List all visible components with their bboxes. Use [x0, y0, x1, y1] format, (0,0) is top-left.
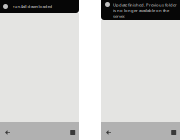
button[interactable]: run4all downloaded [0, 0, 79, 13]
button[interactable]: Recents [166, 122, 180, 140]
button[interactable]: Recents [65, 122, 79, 140]
staticText: is no longer available on the [113, 8, 169, 13]
staticText: Update finished. Previous folder [113, 2, 177, 8]
staticText: run4all downloaded [13, 4, 53, 9]
button[interactable]: Back [101, 122, 115, 140]
staticText: server. [113, 13, 125, 19]
button[interactable]: Back [0, 122, 14, 140]
button[interactable]: Update finished. Previous folder [101, 0, 180, 20]
